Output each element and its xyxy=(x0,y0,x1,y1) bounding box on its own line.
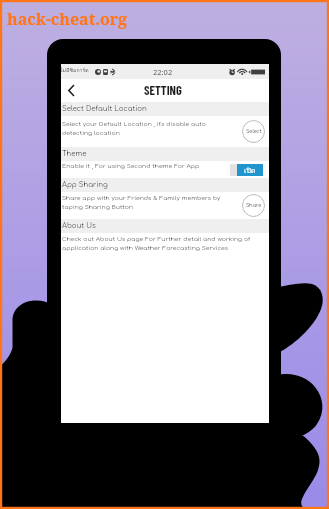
staticText: เปิด xyxy=(244,165,256,176)
staticText: Enable it , For using Second theme For A… xyxy=(62,163,230,170)
staticText: Select Default Location xyxy=(62,105,147,113)
button[interactable]: Share app with your Friends & Family mem… xyxy=(61,192,269,219)
button[interactable]: Enable it , For using Second theme For A… xyxy=(61,161,269,178)
staticText: Select your Default Location , it's disa… xyxy=(62,121,242,137)
staticText: Theme xyxy=(62,150,87,158)
button[interactable]: Share xyxy=(242,194,265,217)
staticText: Share xyxy=(246,203,262,209)
staticText: SETTING xyxy=(144,82,182,97)
button[interactable]: Check out About Us page For Further deta… xyxy=(61,233,269,261)
button[interactable]: Select your Default Location , it's disa… xyxy=(61,116,269,147)
staticText: Select xyxy=(246,129,262,135)
staticText: Share app with your Friends & Family mem… xyxy=(62,195,242,211)
button[interactable]: เปิด xyxy=(230,164,263,176)
staticText: 22:02 xyxy=(153,67,173,77)
button[interactable]: Back xyxy=(61,79,81,102)
staticText: App Sharing xyxy=(62,181,108,189)
staticText: hack-cheat.org xyxy=(7,8,128,30)
staticText: Check out About Us page For Further deta… xyxy=(62,236,267,252)
staticText: ไม่มีซิมการ์ด xyxy=(60,66,89,74)
button[interactable]: Select xyxy=(242,120,265,143)
staticText: About Us xyxy=(62,222,96,230)
